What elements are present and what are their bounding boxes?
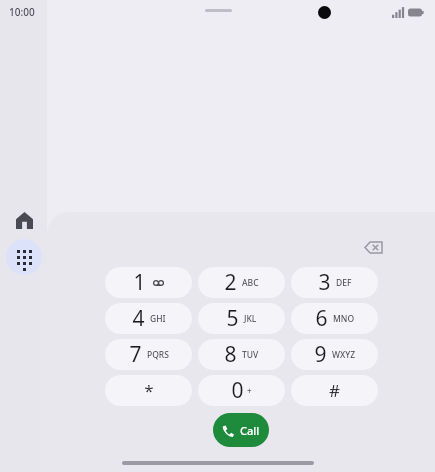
staticText: 6 [315,304,328,333]
staticText: * [144,379,154,402]
staticText: 9 [314,340,327,369]
staticText: ABC [242,277,259,289]
button[interactable]: 1 [105,267,192,298]
button[interactable]: 3 [291,267,378,298]
staticText: TUV [242,349,259,361]
staticText: Call [240,423,260,438]
staticText: MNO [333,313,355,325]
staticText: WXYZ [332,349,356,361]
button[interactable]: Backspace [358,232,388,262]
staticText: 4 [132,304,145,333]
button[interactable]: 2 [198,267,285,298]
button[interactable]: 4 [105,303,192,334]
staticText: JKL [244,313,257,325]
staticText: 10:00 [9,5,35,19]
staticText: 5 [226,304,239,333]
button[interactable]: Call [213,413,269,447]
staticText: 2 [224,268,237,297]
staticText: + [247,385,252,396]
staticText: 3 [318,268,331,297]
button[interactable]: Home [11,207,37,233]
button[interactable]: 0 [198,375,285,406]
staticText: 7 [129,340,142,369]
button[interactable]: 9 [291,339,378,370]
button[interactable]: 5 [198,303,285,334]
staticText: DEF [336,277,352,289]
staticText: GHI [150,313,166,325]
staticText: 8 [224,340,237,369]
button[interactable]: 6 [291,303,378,334]
button[interactable]: Keypad [6,239,42,275]
button[interactable]: * [105,375,192,406]
staticText: # [329,379,340,402]
button[interactable]: 8 [198,339,285,370]
staticText: 0 [231,376,244,405]
button[interactable]: # [291,375,378,406]
button[interactable]: 7 [105,339,192,370]
staticText: 1 [133,268,146,297]
staticText: PQRS [147,349,169,361]
